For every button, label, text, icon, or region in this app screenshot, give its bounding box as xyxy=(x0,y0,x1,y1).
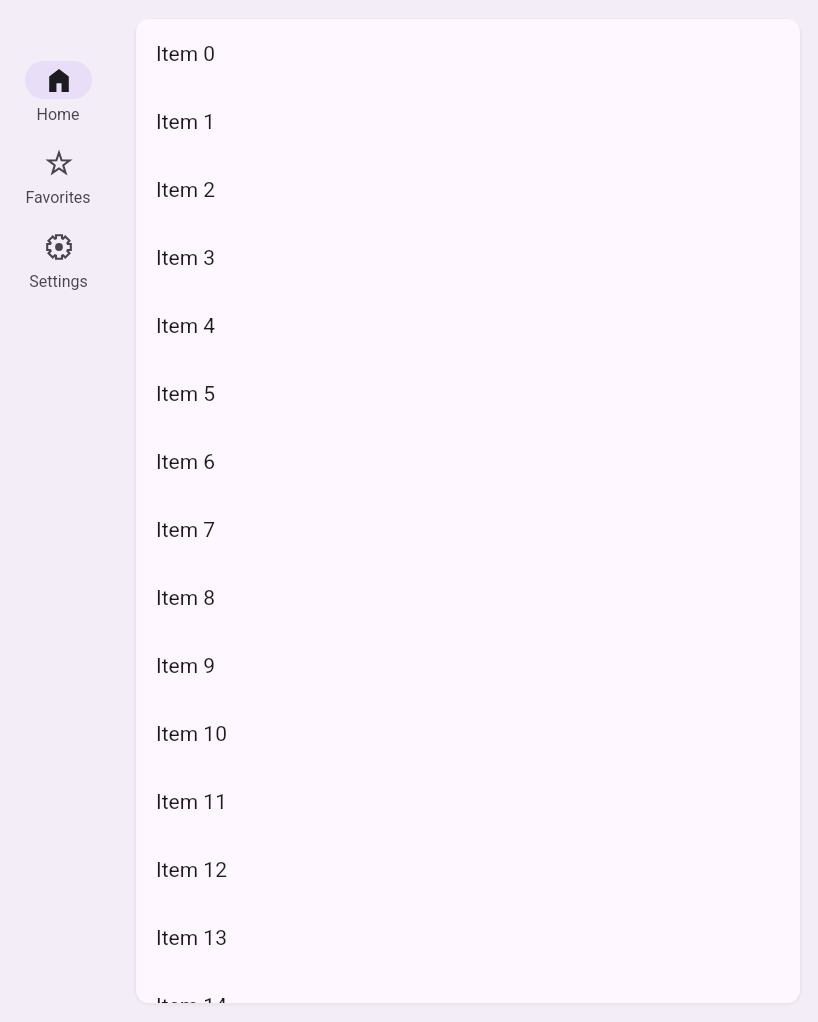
button[interactable]: Item 14 xyxy=(136,971,800,1003)
button[interactable]: Item 11 xyxy=(136,767,800,835)
button[interactable]: Item 12 xyxy=(136,835,800,903)
staticText: Item 14 xyxy=(156,994,227,1003)
staticText: Item 0 xyxy=(156,42,216,67)
staticText: Item 6 xyxy=(156,450,216,475)
button[interactable]: Settings xyxy=(8,228,108,291)
other: Favorites xyxy=(46,150,72,176)
staticText: Item 3 xyxy=(156,246,216,271)
other: Settings xyxy=(46,234,72,260)
staticText: Favorites xyxy=(25,188,91,207)
button[interactable]: Item 4 xyxy=(136,291,800,359)
button[interactable]: Item 5 xyxy=(136,359,800,427)
staticText: Item 4 xyxy=(156,314,216,339)
button[interactable]: Item 2 xyxy=(136,155,800,223)
staticText: Home xyxy=(36,105,80,124)
button[interactable]: Item 10 xyxy=(136,699,800,767)
staticText: Item 8 xyxy=(156,586,216,611)
button[interactable]: Item 13 xyxy=(136,903,800,971)
button[interactable]: Item 6 xyxy=(136,427,800,495)
button[interactable]: Home xyxy=(8,61,108,124)
button[interactable]: Item 7 xyxy=(136,495,800,563)
button[interactable]: Item 3 xyxy=(136,223,800,291)
staticText: Item 7 xyxy=(156,518,216,543)
staticText: Item 1 xyxy=(156,110,216,135)
staticText: Item 5 xyxy=(156,382,216,407)
button[interactable]: Favorites xyxy=(8,144,108,207)
staticText: Item 2 xyxy=(156,178,216,203)
staticText: Item 11 xyxy=(156,790,227,815)
staticText: Settings xyxy=(29,272,88,291)
button[interactable]: Item 1 xyxy=(136,87,800,155)
staticText: Item 9 xyxy=(156,654,216,679)
staticText: Item 12 xyxy=(156,858,227,883)
button[interactable]: Item 0 xyxy=(136,19,800,87)
staticText: Item 10 xyxy=(156,722,227,747)
other: Home xyxy=(46,67,72,93)
staticText: Item 13 xyxy=(156,926,227,951)
button[interactable]: Item 8 xyxy=(136,563,800,631)
button[interactable]: Item 9 xyxy=(136,631,800,699)
